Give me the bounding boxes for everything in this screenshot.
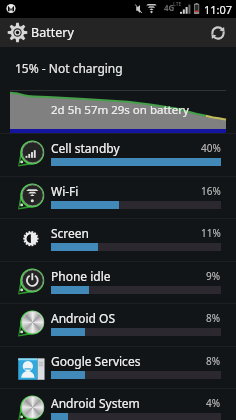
staticText: 4G [164, 2, 175, 13]
staticText: 15% - Not charging [15, 60, 123, 76]
staticText: 8% [206, 311, 221, 325]
button[interactable]: Android OS [0, 303, 236, 346]
staticText: Android OS [51, 310, 115, 326]
staticText: Android System [51, 395, 140, 411]
staticText: Wi-Fi [51, 183, 79, 199]
button[interactable]: Phone idle [0, 261, 236, 304]
staticText: Phone idle [51, 268, 111, 284]
button[interactable]: Cell standby [0, 133, 236, 176]
staticText: 16% [201, 184, 221, 198]
staticText: Google Services [51, 353, 141, 369]
button[interactable]: Google Services [0, 346, 236, 389]
button[interactable]: Wi-Fi [0, 176, 236, 219]
button[interactable]: Screen [0, 218, 236, 261]
staticText: Battery [31, 24, 74, 41]
staticText: Screen [51, 225, 90, 241]
staticText: 8% [206, 354, 221, 368]
button[interactable]: Android System [0, 388, 236, 420]
staticText: 40% [201, 141, 221, 155]
staticText: 9% [206, 269, 221, 283]
staticText: Cell standby [51, 140, 120, 156]
staticText: LTE [173, 1, 182, 8]
staticText: 11:07 [204, 2, 233, 17]
button[interactable]: Refresh [200, 18, 236, 47]
staticText: 2d 5h 57m 29s on battery [51, 102, 189, 118]
staticText: 4% [206, 396, 221, 410]
staticText: 11% [201, 226, 221, 240]
